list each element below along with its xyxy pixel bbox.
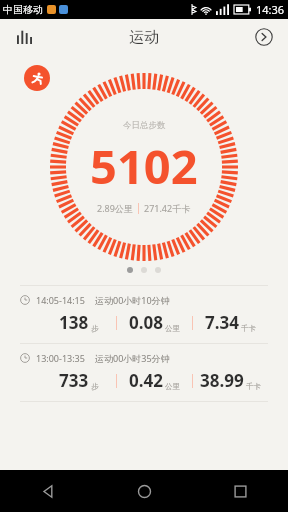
button[interactable]: Page [141, 267, 147, 273]
staticText: 5102 [90, 134, 198, 198]
staticText: 0.08 [129, 311, 163, 334]
staticText: 38.99 [200, 369, 244, 392]
button[interactable]: Running [24, 65, 50, 91]
staticText: 运动00小时35分钟 [95, 352, 170, 364]
button[interactable]: Recents [192, 470, 288, 512]
button[interactable]: 13:00-13:35 [0, 344, 288, 401]
button[interactable]: Statistics [8, 21, 40, 53]
staticText: 138 [59, 311, 89, 334]
button[interactable]: Page [155, 267, 161, 273]
staticText: 千卡 [241, 324, 256, 333]
button[interactable]: Next [248, 21, 280, 53]
staticText: 运动 [129, 28, 159, 47]
staticText: 千卡 [246, 382, 261, 391]
staticText: 0.42 [129, 369, 163, 392]
staticText: 公里 [165, 324, 180, 333]
staticText: 14:05-14:15 [36, 294, 85, 306]
staticText: 中国移动 [3, 3, 43, 16]
staticText: 733 [59, 369, 89, 392]
staticText: 今日总步数 [123, 120, 166, 131]
button[interactable]: 14:05-14:15 [0, 286, 288, 343]
staticText: 7.34 [205, 311, 239, 334]
button[interactable]: Page [127, 267, 133, 273]
staticText: 2.89公里 [97, 202, 133, 214]
staticText: 13:00-13:35 [36, 352, 85, 364]
staticText: 14:36 [256, 2, 285, 17]
button[interactable]: Home [96, 470, 192, 512]
staticText: 271.42千卡 [144, 202, 191, 214]
staticText: 运动00小时10分钟 [95, 294, 170, 306]
button[interactable]: Back [0, 470, 96, 512]
staticText: 步 [91, 382, 99, 391]
staticText: 公里 [165, 382, 180, 391]
staticText: 步 [91, 324, 99, 333]
